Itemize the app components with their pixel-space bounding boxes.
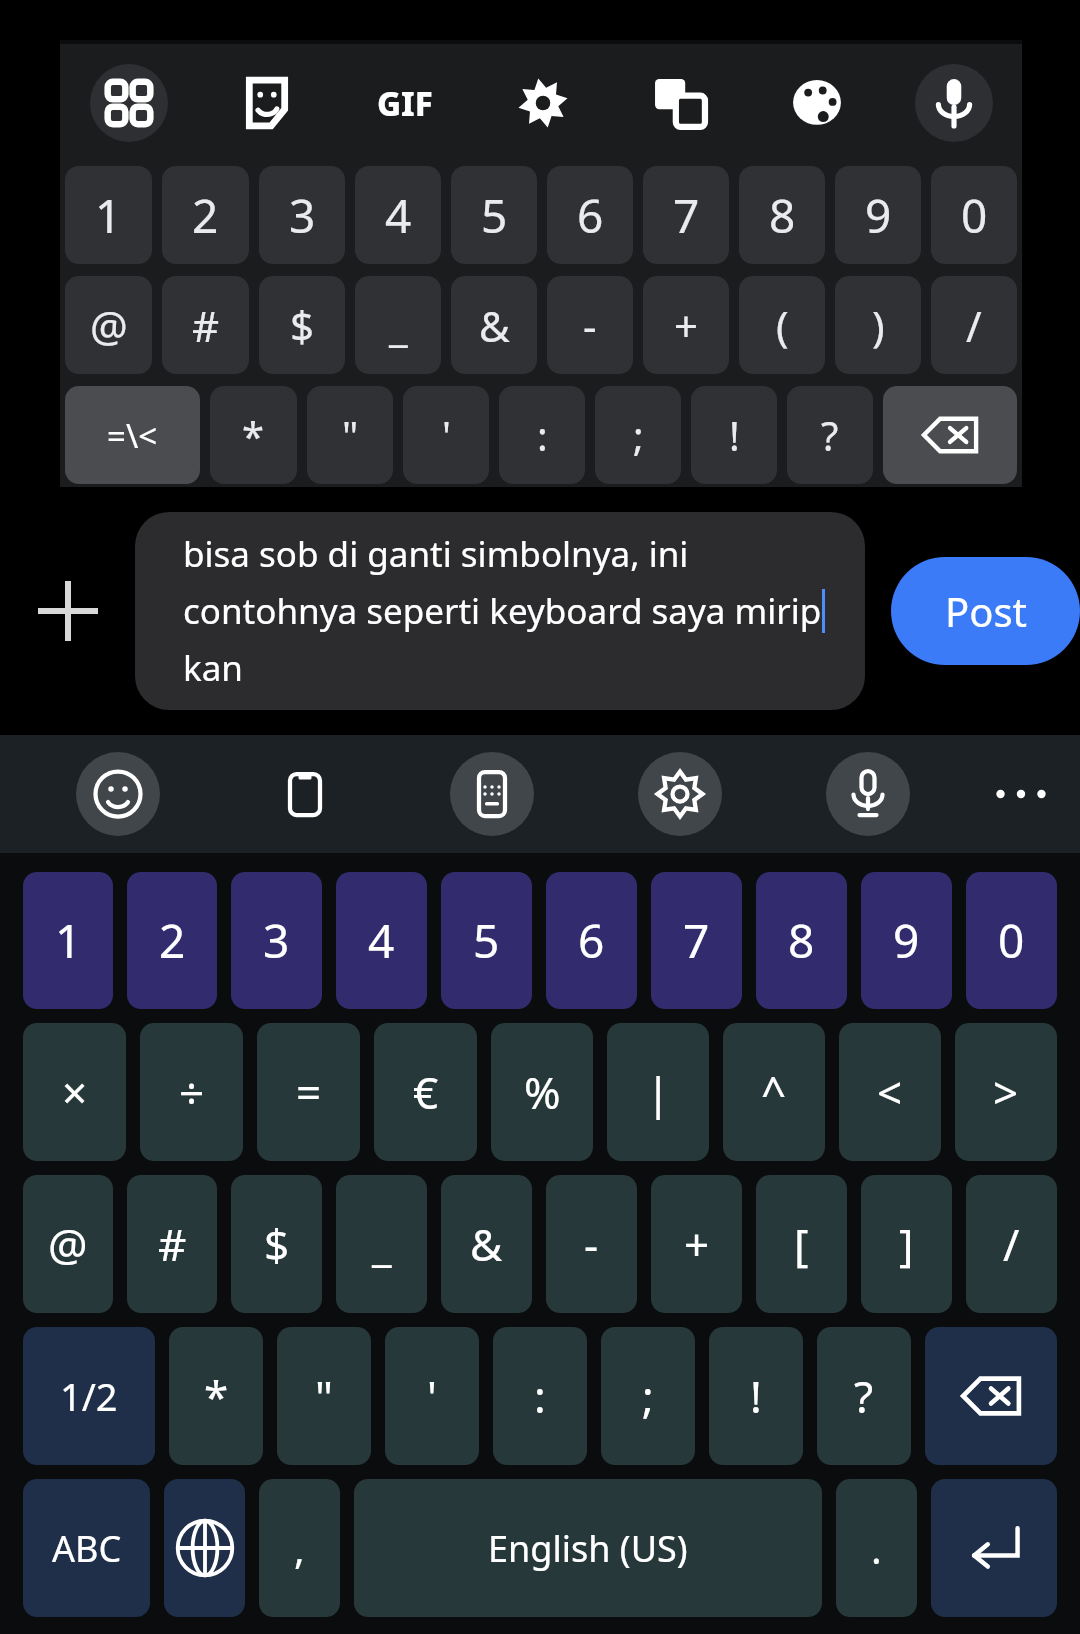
staticText: ! (729, 408, 740, 462)
button[interactable]: < (839, 1023, 941, 1161)
button[interactable]: ? (817, 1327, 911, 1465)
button[interactable]: ^ (723, 1023, 825, 1161)
button[interactable]: : (499, 386, 585, 484)
button[interactable]: Voice input (774, 735, 962, 853)
button[interactable]: ) (835, 276, 921, 374)
button[interactable]: | (607, 1023, 709, 1161)
staticText: bisa sob di ganti simbolnya, ini (183, 530, 689, 578)
button[interactable]: ÷ (140, 1023, 243, 1161)
button[interactable]: ! (709, 1327, 803, 1465)
staticText: 3 (289, 184, 316, 247)
button[interactable]: Change language (164, 1479, 245, 1617)
button[interactable]: $ (231, 1175, 322, 1313)
button[interactable]: GIF (336, 48, 474, 158)
button[interactable]: . (836, 1479, 917, 1617)
button[interactable]: " (307, 386, 393, 484)
button[interactable]: $ (259, 276, 345, 374)
button[interactable]: 0 (931, 166, 1017, 264)
staticText: GIF (377, 81, 433, 126)
button[interactable]: Voice input (885, 48, 1022, 158)
button[interactable]: [ (756, 1175, 847, 1313)
button[interactable]: - (546, 1175, 637, 1313)
button[interactable]: Post (891, 557, 1080, 665)
button[interactable]: * (169, 1327, 263, 1465)
staticText: # (158, 1214, 187, 1274)
button[interactable]: _ (336, 1175, 427, 1313)
button[interactable]: 9 (861, 872, 952, 1009)
button[interactable]: + (643, 276, 729, 374)
button[interactable]: ' (403, 386, 489, 484)
button[interactable]: Theme (748, 48, 885, 158)
staticText: × (62, 1062, 88, 1122)
button[interactable]: 1/2 (23, 1327, 155, 1465)
button[interactable]: 3 (231, 872, 322, 1009)
button[interactable]: + (651, 1175, 742, 1313)
button[interactable]: Emoji (24, 735, 211, 853)
button[interactable]: ! (691, 386, 777, 484)
button[interactable]: Settings (586, 735, 774, 853)
button[interactable]: : (493, 1327, 587, 1465)
button[interactable]: 8 (756, 872, 847, 1009)
button[interactable]: =\< (65, 386, 200, 484)
button[interactable]: English (US) (354, 1479, 822, 1617)
button[interactable]: 9 (835, 166, 921, 264)
button[interactable]: 3 (259, 166, 345, 264)
staticText: - (583, 297, 597, 354)
button[interactable]: 1 (23, 872, 113, 1009)
button[interactable]: @ (65, 276, 152, 374)
button[interactable]: Settings (474, 48, 611, 158)
button[interactable]: / (966, 1175, 1057, 1313)
button[interactable]: Keyboard layout (398, 735, 586, 853)
button[interactable]: Translate (611, 48, 748, 158)
button[interactable]: ] (861, 1175, 952, 1313)
button[interactable]: 5 (451, 166, 537, 264)
button[interactable]: ; (601, 1327, 695, 1465)
staticText: 0 (961, 184, 988, 247)
button[interactable]: ' (385, 1327, 479, 1465)
button[interactable]: @ (23, 1175, 113, 1313)
button[interactable]: 5 (441, 872, 532, 1009)
button[interactable]: × (23, 1023, 126, 1161)
button[interactable]: & (441, 1175, 532, 1313)
button[interactable]: 6 (547, 166, 633, 264)
button[interactable]: _ (355, 276, 441, 374)
button[interactable]: bisa sob di ganti simbolnya, ini (135, 512, 865, 710)
button[interactable]: 1 (65, 166, 152, 264)
button[interactable]: Backspace (925, 1327, 1057, 1465)
button[interactable]: > (955, 1023, 1057, 1161)
button[interactable]: / (931, 276, 1017, 374)
button[interactable]: Clipboard (211, 735, 398, 853)
staticText: 7 (673, 184, 700, 247)
staticText: 0 (998, 909, 1025, 972)
button[interactable]: 4 (355, 166, 441, 264)
button[interactable]: 8 (739, 166, 825, 264)
button[interactable]: * (210, 386, 297, 484)
button[interactable]: 2 (162, 166, 249, 264)
button[interactable]: Apps (60, 48, 198, 158)
button[interactable]: # (162, 276, 249, 374)
button[interactable]: % (491, 1023, 593, 1161)
button[interactable]: # (127, 1175, 217, 1313)
button[interactable]: 0 (966, 872, 1057, 1009)
button[interactable]: - (547, 276, 633, 374)
button[interactable]: Stickers (198, 48, 336, 158)
button[interactable]: Add attachment (0, 487, 135, 735)
button[interactable]: , (259, 1479, 340, 1617)
button[interactable]: 6 (546, 872, 637, 1009)
button[interactable]: Backspace (883, 386, 1017, 484)
button[interactable]: 7 (643, 166, 729, 264)
button[interactable]: 7 (651, 872, 742, 1009)
button[interactable]: ( (739, 276, 825, 374)
button[interactable]: ; (595, 386, 681, 484)
button[interactable]: & (451, 276, 537, 374)
button[interactable]: = (257, 1023, 360, 1161)
button[interactable]: Enter (931, 1479, 1057, 1617)
staticText: 4 (368, 909, 395, 972)
button[interactable]: ? (787, 386, 873, 484)
button[interactable]: 4 (336, 872, 427, 1009)
button[interactable]: ABC (23, 1479, 150, 1617)
button[interactable]: € (374, 1023, 477, 1161)
button[interactable]: More options (962, 735, 1080, 853)
button[interactable]: 2 (127, 872, 217, 1009)
button[interactable]: " (277, 1327, 371, 1465)
